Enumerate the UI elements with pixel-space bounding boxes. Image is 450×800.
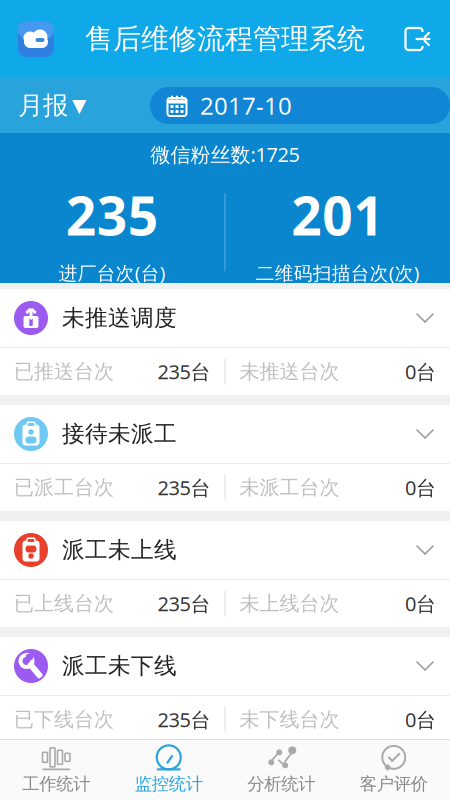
staticText: 工作统计	[22, 773, 90, 795]
staticText: 未推送调度	[62, 304, 177, 332]
staticText: 派工未下线	[62, 652, 177, 680]
staticText: 客户评价	[360, 773, 428, 795]
button[interactable]: 未推送调度	[0, 289, 450, 347]
button[interactable]: 2017-10	[150, 87, 450, 124]
staticText: 已上线台次	[14, 591, 114, 616]
staticText: 分析统计	[247, 773, 315, 795]
staticText: 未派工台次	[239, 475, 339, 500]
staticText: 已派工台次	[14, 475, 114, 500]
staticText: 未下线台次	[239, 707, 339, 732]
staticText: 0台	[405, 590, 436, 617]
button[interactable]: 派工未上线	[0, 521, 450, 579]
staticText: 未推送台次	[239, 359, 339, 384]
staticText: 0台	[405, 358, 436, 385]
staticText: 235台	[157, 706, 210, 733]
button[interactable]: 客户评价	[337, 740, 450, 800]
staticText: 235	[66, 179, 159, 250]
staticText: 监控统计	[135, 773, 203, 795]
staticText: ▼	[72, 95, 86, 116]
button[interactable]: Sign out	[404, 26, 450, 52]
staticText: 已推送台次	[14, 359, 114, 384]
staticText: 0台	[405, 706, 436, 733]
staticText: 进厂台次(台)	[59, 260, 166, 285]
button[interactable]: 月报	[0, 78, 104, 133]
button[interactable]: 分析统计	[225, 740, 337, 800]
staticText: 月报	[18, 90, 68, 121]
button[interactable]: 接待未派工	[0, 405, 450, 463]
staticText: 接待未派工	[62, 420, 177, 448]
button[interactable]: 工作统计	[0, 740, 112, 800]
staticText: 235台	[157, 474, 210, 501]
button[interactable]: App home	[0, 21, 54, 57]
staticText: 235台	[157, 358, 210, 385]
staticText: 201	[291, 179, 384, 250]
staticText: 售后维修流程管理系统	[85, 22, 365, 56]
staticText: 未上线台次	[239, 591, 339, 616]
staticText: 微信粉丝数:1725	[150, 141, 299, 167]
button[interactable]: 派工未下线	[0, 637, 450, 695]
staticText: 2017-10	[200, 90, 292, 121]
button[interactable]: 监控统计	[112, 740, 225, 800]
staticText: 已下线台次	[14, 707, 114, 732]
staticText: 0台	[405, 474, 436, 501]
staticText: 派工未上线	[62, 536, 177, 564]
staticText: 235台	[157, 590, 210, 617]
staticText: 二维码扫描台次(次)	[256, 260, 420, 285]
